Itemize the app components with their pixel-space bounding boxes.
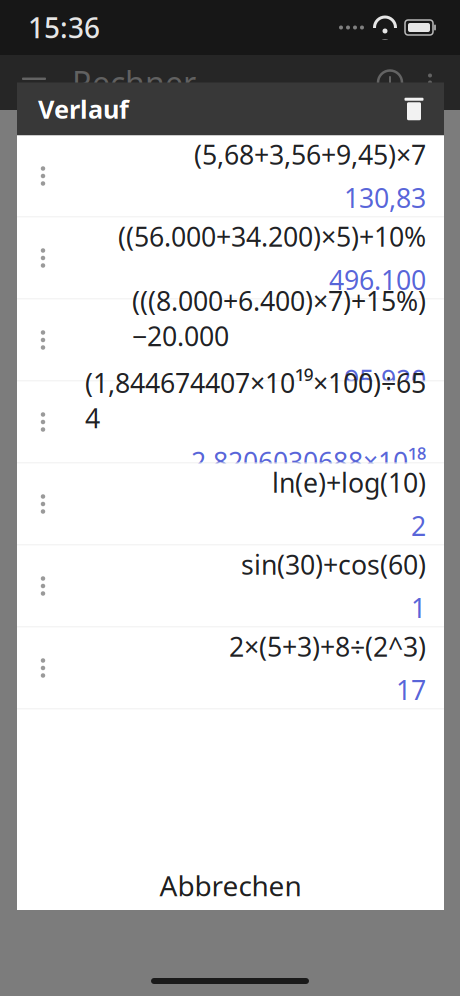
staticText: 130,83: [344, 180, 426, 215]
button[interactable]: Abbrechen: [22, 862, 439, 908]
button[interactable]: (1,844674407×10¹⁹×100)÷654: [17, 381, 444, 462]
staticText: 95.920: [344, 362, 426, 397]
button[interactable]: Menü: [12, 60, 56, 104]
staticText: 2: [411, 508, 426, 543]
staticText: Rechner: [72, 61, 196, 104]
staticText: (5,68+3,56+9,45)×7: [194, 137, 426, 172]
staticText: Verlauf: [38, 92, 129, 126]
staticText: (((8.000+6.400)×7)+15%)−20.000: [132, 283, 426, 354]
staticText: 15:36: [28, 9, 100, 46]
staticText: 1: [411, 590, 426, 625]
button[interactable]: Verlauf löschen: [392, 87, 436, 131]
staticText: (1,844674407×10¹⁹×100)÷654: [85, 365, 426, 436]
button[interactable]: sin(30)+cos(60): [17, 545, 444, 626]
button[interactable]: 2×(5+3)+8÷(2^3): [17, 627, 444, 708]
staticText: sin(30)+cos(60): [241, 547, 426, 582]
button[interactable]: ln(e)+log(10): [17, 463, 444, 544]
button[interactable]: Weitere Optionen: [412, 60, 448, 104]
button[interactable]: (5,68+3,56+9,45)×7: [17, 135, 444, 216]
button[interactable]: ((56.000+34.200)×5)+10%: [17, 217, 444, 298]
staticText: 2,8206030688×10¹⁸: [191, 444, 426, 479]
button[interactable]: (((8.000+6.400)×7)+15%)−20.000: [17, 299, 444, 380]
staticText: 17: [396, 672, 426, 707]
staticText: 496.100: [329, 262, 426, 297]
button[interactable]: Verlauf: [368, 60, 412, 104]
staticText: ln(e)+log(10): [272, 465, 426, 500]
staticText: Abbrechen: [159, 867, 301, 904]
staticText: ((56.000+34.200)×5)+10%: [118, 219, 426, 254]
staticText: 2×(5+3)+8÷(2^3): [229, 629, 426, 664]
